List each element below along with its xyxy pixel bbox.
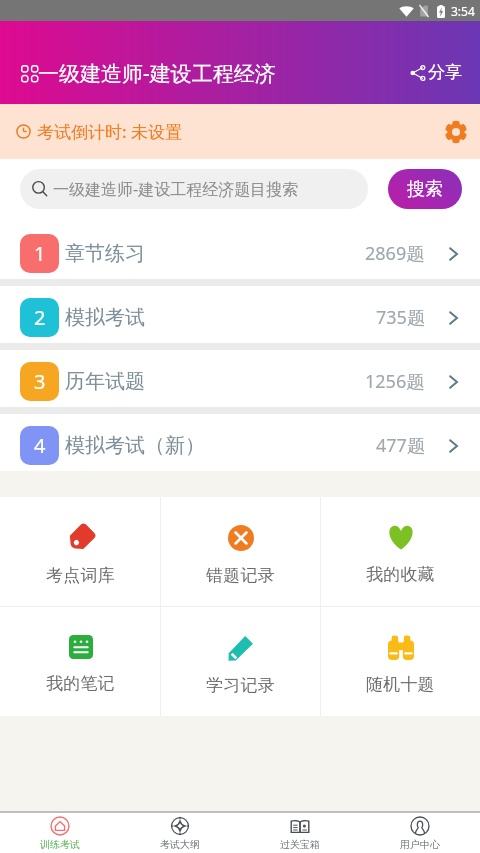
staticText: 考试倒计时: 未设置: [37, 120, 183, 143]
staticText: 训练考试: [40, 838, 80, 851]
staticText: 过关宝箱: [280, 838, 320, 851]
button[interactable]: 过关宝箱: [240, 813, 360, 853]
staticText: 历年试题: [65, 369, 145, 394]
staticText: 735题: [376, 305, 425, 330]
button[interactable]: 3: [0, 350, 480, 407]
button[interactable]: 随机十题: [321, 607, 480, 716]
staticText: 4: [34, 432, 46, 459]
button[interactable]: 考试倒计时: 未设置: [0, 104, 480, 159]
staticText: 随机十题: [366, 674, 435, 695]
button[interactable]: 考试大纲: [120, 813, 240, 853]
button[interactable]: 错题记录: [161, 497, 320, 606]
staticText: 一级建造师-建设工程经济: [38, 59, 276, 88]
button[interactable]: 训练考试: [0, 813, 120, 853]
staticText: 模拟考试: [65, 305, 145, 330]
staticText: 2869题: [365, 241, 425, 266]
staticText: 3:54: [451, 3, 475, 19]
button[interactable]: 我的收藏: [321, 497, 480, 606]
staticText: 用户中心: [400, 838, 440, 851]
button[interactable]: 一级建造师-建设工程经济题目搜索: [20, 169, 368, 209]
button[interactable]: 2: [0, 286, 480, 343]
staticText: 我的笔记: [46, 673, 115, 694]
button[interactable]: 考点词库: [0, 497, 160, 606]
staticText: 章节练习: [65, 241, 145, 266]
button[interactable]: 1: [0, 222, 480, 279]
staticText: 2: [34, 304, 46, 331]
staticText: 错题记录: [206, 565, 275, 586]
button[interactable]: 用户中心: [360, 813, 480, 853]
staticText: 1: [34, 240, 46, 267]
staticText: 一级建造师-建设工程经济题目搜索: [53, 178, 299, 200]
staticText: 考试大纲: [160, 838, 200, 851]
staticText: 477题: [376, 433, 425, 458]
button[interactable]: 设置: [445, 121, 467, 143]
staticText: 学习记录: [206, 675, 275, 696]
staticText: 3: [34, 368, 46, 395]
button[interactable]: 搜索: [388, 169, 462, 209]
staticText: 分享: [428, 62, 462, 83]
staticText: 考点词库: [46, 565, 115, 586]
staticText: 模拟考试（新）: [65, 433, 205, 458]
staticText: 搜索: [407, 178, 443, 201]
staticText: 1256题: [365, 369, 425, 394]
button[interactable]: 分享: [410, 62, 462, 83]
staticText: 我的收藏: [366, 564, 435, 585]
button[interactable]: 我的笔记: [0, 607, 160, 716]
button[interactable]: 学习记录: [161, 607, 320, 716]
button[interactable]: 4: [0, 414, 480, 471]
